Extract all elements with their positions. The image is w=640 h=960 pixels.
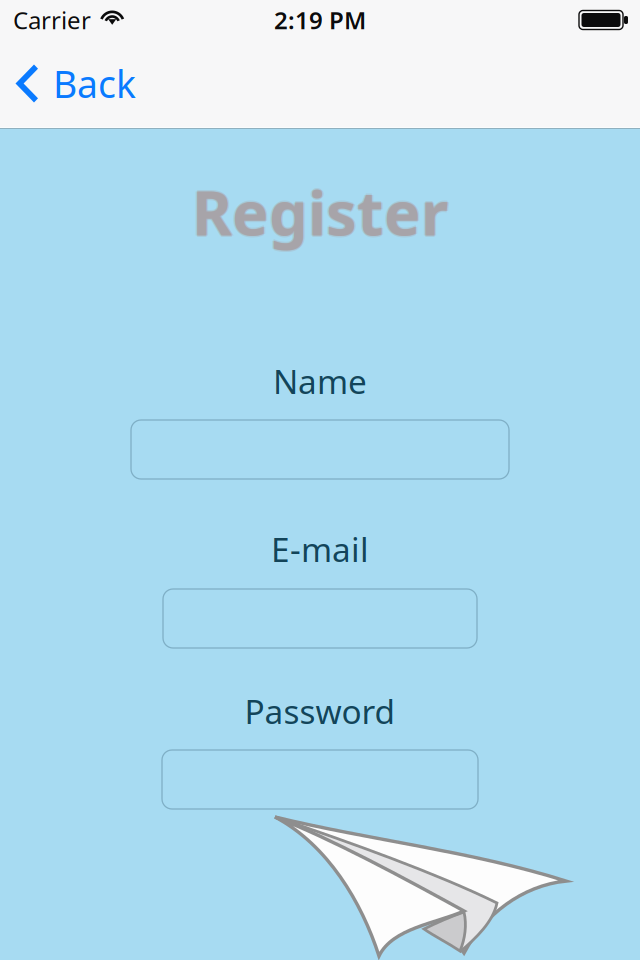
staticText: 2:19 PM — [274, 4, 366, 36]
staticText: Carrier — [13, 4, 91, 36]
staticText: Register — [192, 173, 448, 254]
staticText: E-mail — [271, 527, 369, 571]
button[interactable]: Back — [0, 40, 640, 127]
staticText: Register — [192, 169, 448, 251]
staticText: Password — [244, 689, 395, 733]
staticText: Register — [192, 171, 448, 252]
staticText: Register — [194, 171, 450, 252]
staticText: Back — [53, 59, 136, 108]
staticText: Name — [273, 359, 367, 403]
staticText: Register — [190, 171, 446, 252]
